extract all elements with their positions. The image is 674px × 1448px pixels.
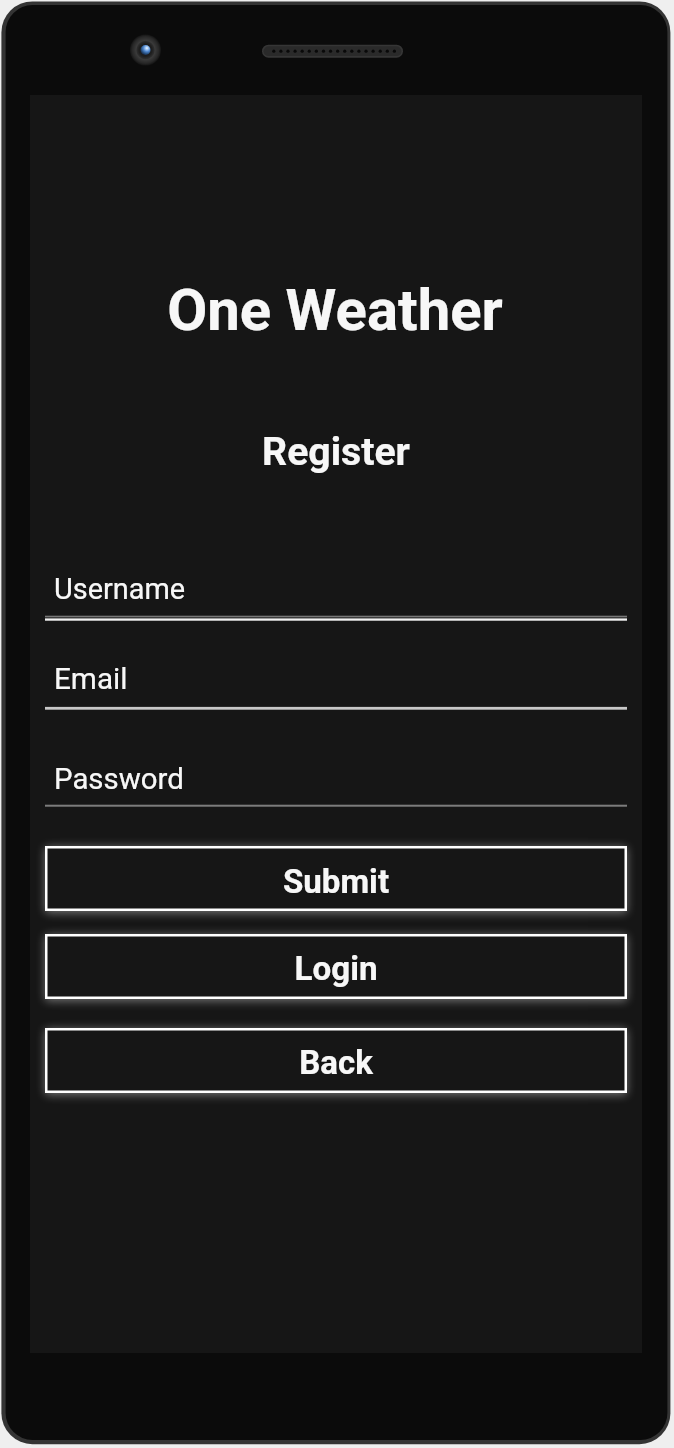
staticText: Email: [54, 661, 128, 696]
button[interactable]: Username: [45, 561, 627, 623]
button[interactable]: Password: [45, 751, 627, 811]
staticText: Password: [54, 762, 184, 796]
button[interactable]: Email: [45, 651, 627, 713]
staticText: Register: [30, 429, 642, 475]
staticText: One Weather: [29, 276, 641, 344]
staticText: Username: [54, 572, 186, 606]
staticText: Back: [45, 1043, 627, 1082]
button[interactable]: Login: [45, 934, 627, 999]
button[interactable]: Back: [45, 1028, 627, 1093]
staticText: Submit: [45, 862, 627, 901]
button[interactable]: Submit: [45, 846, 627, 911]
staticText: Login: [45, 949, 627, 988]
